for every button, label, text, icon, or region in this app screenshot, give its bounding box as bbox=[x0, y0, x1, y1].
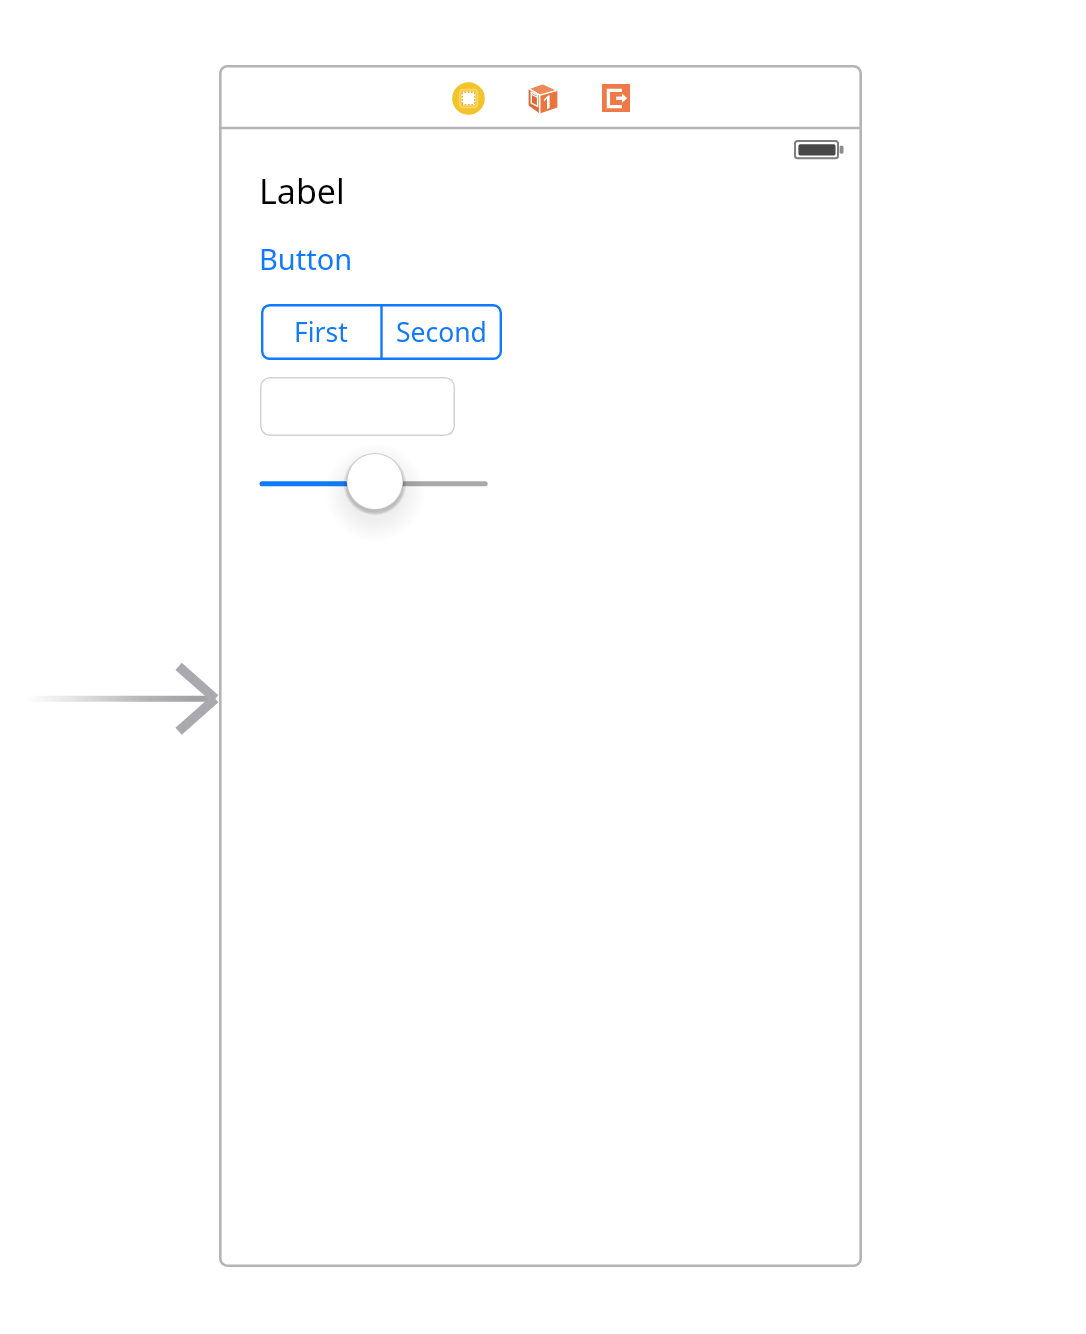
staticText: Button bbox=[259, 239, 353, 278]
staticText: Second bbox=[396, 314, 487, 350]
button[interactable]: View Controller bbox=[452, 82, 485, 115]
button[interactable]: Exit bbox=[602, 84, 630, 112]
button[interactable]: Second bbox=[381, 304, 502, 360]
button[interactable]: First bbox=[261, 304, 381, 360]
button[interactable]: Slider bbox=[254, 452, 504, 514]
button[interactable]: Button bbox=[259, 239, 353, 278]
button[interactable]: First Responder bbox=[528, 83, 558, 114]
staticText: Label bbox=[259, 168, 345, 214]
button[interactable]: Text field bbox=[260, 377, 455, 436]
staticText: First bbox=[294, 314, 348, 350]
